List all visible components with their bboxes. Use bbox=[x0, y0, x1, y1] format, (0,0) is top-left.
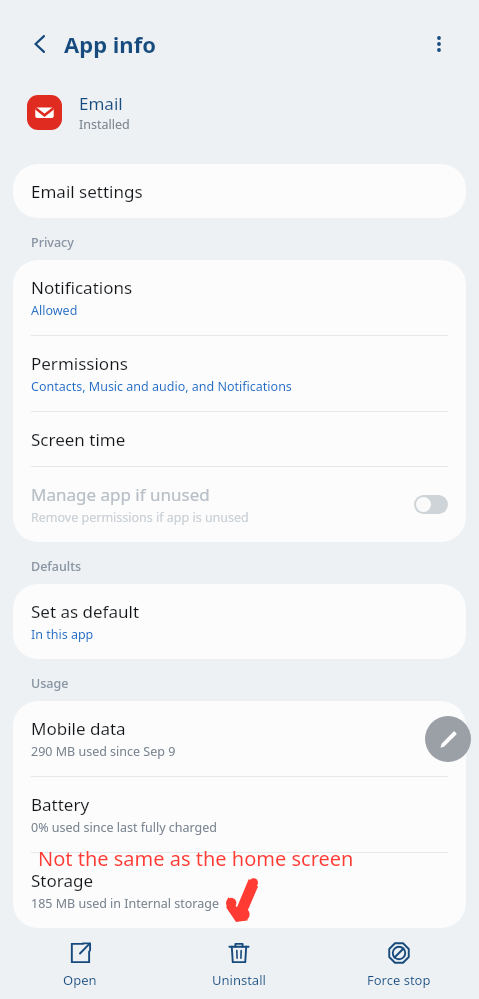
button[interactable]: Permissions bbox=[13, 336, 466, 411]
button[interactable]: Screen time bbox=[13, 412, 466, 466]
button[interactable]: Back bbox=[18, 22, 62, 66]
button[interactable]: Mobile data bbox=[13, 701, 466, 776]
staticText: 290 MB used since Sep 9 bbox=[31, 743, 176, 760]
staticText: Force stop bbox=[367, 971, 431, 989]
staticText: Privacy bbox=[31, 234, 74, 251]
staticText: Not the same as the home screen bbox=[38, 845, 354, 872]
staticText: Notifications bbox=[31, 276, 133, 299]
staticText: App info bbox=[64, 29, 156, 59]
staticText: Set as default bbox=[31, 600, 140, 623]
button[interactable]: More options bbox=[417, 22, 461, 66]
staticText: Storage bbox=[31, 869, 94, 892]
button[interactable]: Storage bbox=[13, 853, 466, 928]
button[interactable]: Set as default bbox=[13, 584, 466, 659]
staticText: Screen time bbox=[31, 428, 126, 451]
button[interactable]: Edit bbox=[425, 716, 471, 762]
staticText: Manage app if unused bbox=[31, 483, 210, 506]
staticText: Email settings bbox=[31, 180, 143, 203]
staticText: 0% used since last fully charged bbox=[31, 819, 218, 836]
staticText: Allowed bbox=[31, 302, 78, 319]
button[interactable]: Manage app if unused toggle bbox=[414, 495, 448, 514]
staticText: Remove permissions if app is unused bbox=[31, 509, 249, 526]
button[interactable]: Manage app if unused bbox=[13, 467, 466, 542]
button[interactable]: Open bbox=[0, 930, 159, 999]
staticText: Installed bbox=[79, 116, 130, 133]
staticText: Permissions bbox=[31, 352, 128, 375]
staticText: Contacts, Music and audio, and Notificat… bbox=[31, 378, 292, 395]
staticText: Defaults bbox=[31, 558, 82, 575]
button[interactable]: Notifications bbox=[13, 260, 466, 335]
staticText: Battery bbox=[31, 793, 90, 816]
staticText: Uninstall bbox=[212, 971, 266, 989]
button[interactable]: Force stop bbox=[319, 930, 479, 999]
staticText: Open bbox=[63, 971, 97, 989]
staticText: 185 MB used in Internal storage bbox=[31, 895, 219, 912]
staticText: Mobile data bbox=[31, 717, 126, 740]
staticText: In this app bbox=[31, 626, 94, 643]
button[interactable]: Battery bbox=[13, 777, 466, 852]
staticText: Email bbox=[79, 92, 123, 115]
button[interactable]: Uninstall bbox=[159, 930, 319, 999]
staticText: Usage bbox=[31, 675, 69, 692]
button[interactable]: Email settings bbox=[13, 164, 466, 218]
